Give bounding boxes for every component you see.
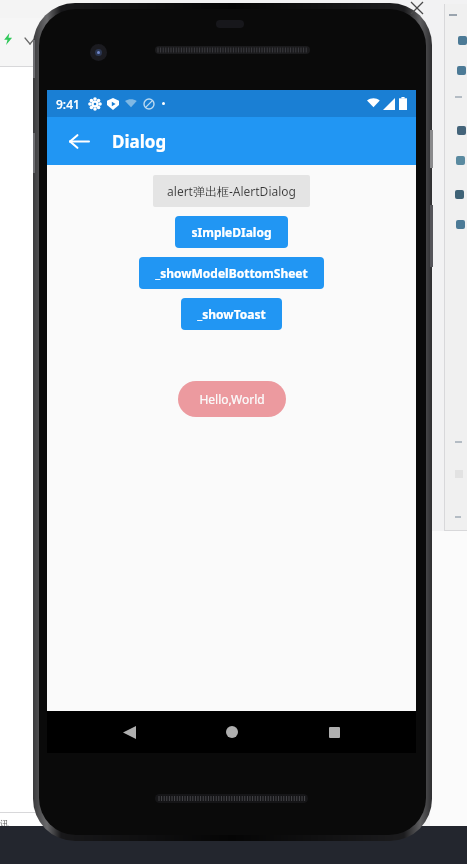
staticText: _showModelBottomSheet	[155, 265, 308, 281]
button[interactable]: Hello,World	[178, 381, 286, 417]
staticText: Hello,World	[199, 391, 265, 407]
staticText: 讯	[0, 818, 9, 829]
button[interactable]: alert弹出框-AlertDialog	[153, 175, 310, 207]
staticText: Dialog	[112, 130, 167, 153]
staticText: _showToast	[197, 306, 266, 322]
button[interactable]: Home	[212, 712, 252, 752]
button[interactable]: sImpleDIalog	[175, 216, 288, 248]
staticText: 9:41	[56, 96, 80, 112]
button[interactable]: Back	[109, 712, 149, 752]
button[interactable]: _showToast	[181, 298, 282, 330]
button[interactable]: Recents	[314, 712, 354, 752]
staticText: alert弹出框-AlertDialog	[167, 183, 296, 199]
button[interactable]: _showModelBottomSheet	[139, 257, 324, 289]
button[interactable]: Back	[59, 121, 99, 161]
staticText: sImpleDIalog	[191, 224, 272, 240]
